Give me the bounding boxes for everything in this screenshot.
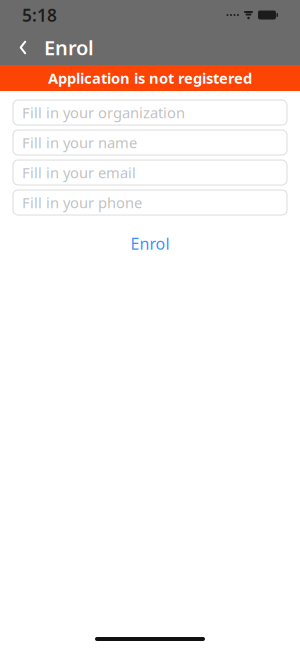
button[interactable]: Fill in your phone [13, 190, 287, 215]
staticText: Fill in your name [22, 133, 137, 152]
staticText: Fill in your phone [22, 193, 142, 212]
staticText: Fill in your email [22, 163, 136, 182]
staticText: Enrol [130, 233, 169, 254]
staticText: Application is not registered [48, 68, 252, 88]
staticText: Fill in your organization [22, 103, 185, 122]
staticText: Enrol [44, 34, 94, 61]
button[interactable]: Back [6, 30, 40, 64]
button[interactable]: Fill in your email [13, 160, 287, 185]
staticText: 5:18 [22, 3, 57, 26]
button[interactable]: Fill in your name [13, 130, 287, 155]
button[interactable]: Enrol [114, 227, 185, 260]
button[interactable]: Fill in your organization [13, 100, 287, 125]
